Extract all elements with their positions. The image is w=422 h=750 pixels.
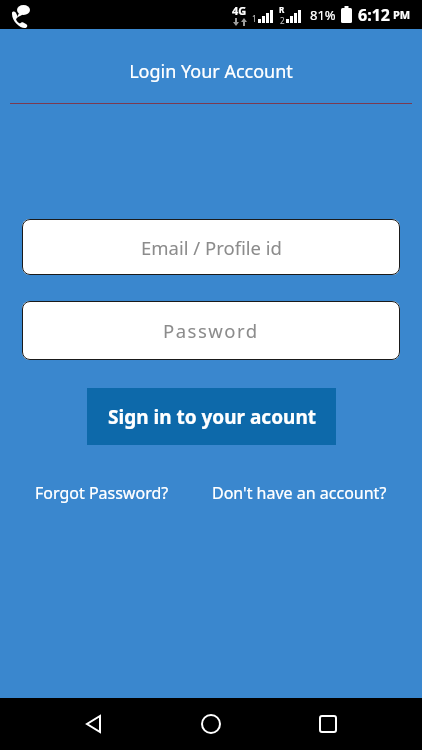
button[interactable]: Forgot Password?	[35, 482, 169, 504]
staticText: 4G	[232, 3, 247, 18]
staticText: PM	[393, 7, 411, 22]
button[interactable]	[302, 698, 354, 750]
button[interactable]: Don't have an account?	[212, 482, 387, 504]
staticText: Email / Profile id	[141, 235, 282, 260]
staticText: Password	[163, 318, 259, 343]
staticText: 2	[280, 15, 285, 26]
staticText: Login Your Account	[0, 59, 422, 84]
staticText: R	[279, 4, 285, 15]
button[interactable]	[68, 698, 120, 750]
button[interactable]: Email / Profile id	[22, 219, 400, 275]
staticText: Sign in to your acount	[108, 404, 316, 430]
button[interactable]: Password	[22, 301, 400, 360]
button[interactable]	[185, 698, 237, 750]
staticText: 81%	[310, 6, 336, 24]
staticText: 6:12	[358, 4, 390, 26]
button[interactable]: Sign in to your acount	[87, 388, 336, 445]
staticText: 1	[252, 13, 257, 24]
